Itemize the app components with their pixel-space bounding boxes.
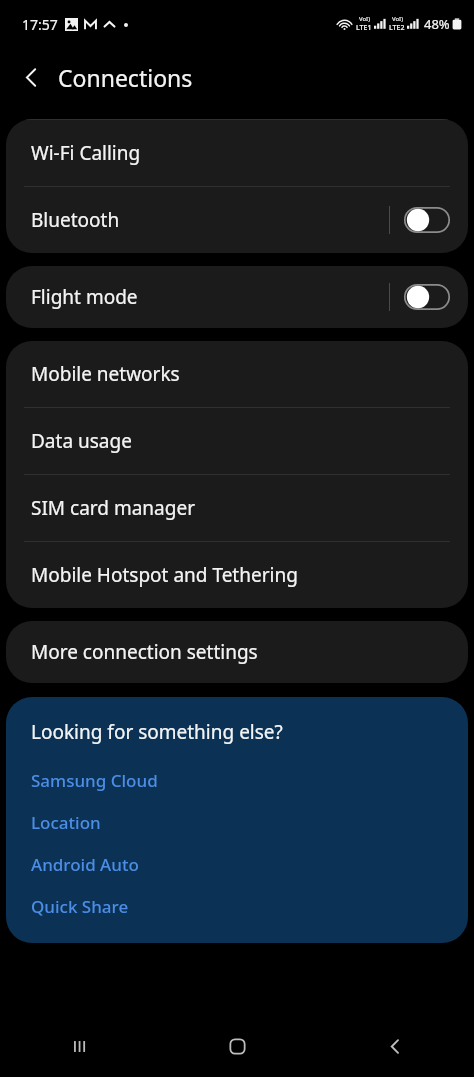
- button[interactable]: Quick Share: [31, 885, 450, 927]
- staticText: 17:57: [22, 15, 58, 34]
- staticText: VoI): [392, 15, 403, 23]
- staticText: SIM card manager: [31, 495, 450, 521]
- button[interactable]: SIM card manager: [6, 475, 468, 541]
- button[interactable]: Toggle off: [404, 207, 450, 233]
- button[interactable]: Data usage: [6, 408, 468, 474]
- staticText: VoI): [359, 15, 370, 23]
- staticText: Flight mode: [31, 284, 389, 310]
- button[interactable]: Mobile Hotspot and Tethering: [6, 542, 468, 608]
- staticText: Bluetooth: [31, 207, 389, 233]
- staticText: Samsung Cloud: [31, 769, 158, 792]
- button[interactable]: Location: [31, 801, 450, 843]
- button[interactable]: Mobile networks: [6, 341, 468, 407]
- button[interactable]: Back: [7, 53, 55, 101]
- staticText: Location: [31, 811, 101, 834]
- button[interactable]: Bluetooth: [6, 187, 468, 253]
- button[interactable]: Recents: [0, 1015, 158, 1077]
- staticText: Looking for something else?: [31, 719, 283, 745]
- button[interactable]: Wi-Fi Calling: [6, 120, 468, 186]
- staticText: Wi-Fi Calling: [31, 140, 450, 166]
- staticText: Mobile Hotspot and Tethering: [31, 562, 450, 588]
- staticText: Mobile networks: [31, 361, 450, 387]
- staticText: Quick Share: [31, 895, 129, 918]
- button[interactable]: Back: [316, 1015, 474, 1077]
- staticText: Data usage: [31, 428, 450, 454]
- button[interactable]: More connection settings: [6, 621, 468, 683]
- button[interactable]: Samsung Cloud: [31, 759, 450, 801]
- staticText: 48%: [424, 15, 450, 33]
- button[interactable]: Home: [158, 1015, 316, 1077]
- staticText: LTE2: [389, 23, 405, 33]
- button[interactable]: Android Auto: [31, 843, 450, 885]
- staticText: More connection settings: [31, 639, 450, 665]
- button[interactable]: Flight mode: [6, 266, 468, 328]
- staticText: Android Auto: [31, 853, 139, 876]
- staticText: LTE1: [356, 23, 372, 33]
- staticText: Connections: [58, 62, 193, 93]
- button[interactable]: Toggle off: [404, 284, 450, 310]
